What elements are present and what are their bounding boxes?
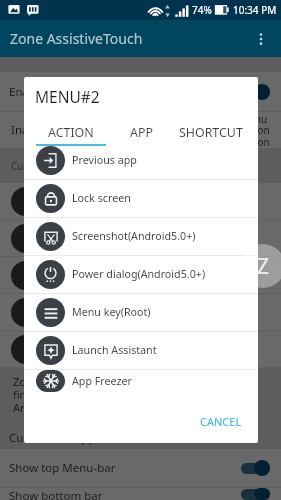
staticText: SHORTCUT	[179, 124, 243, 141]
button[interactable]: Lock screen	[24, 180, 258, 217]
button[interactable]: Screenshot(Android5.0+)	[24, 218, 258, 255]
button[interactable]: Show top Menu-bar	[0, 449, 281, 487]
button[interactable]: Inactive opacity	[0, 112, 281, 148]
staticText: Show top Menu-bar	[9, 460, 116, 476]
button[interactable]: Assistive touch bubble	[241, 244, 281, 288]
staticText: Zone AssistiveTouch	[10, 29, 143, 48]
staticText: Zone AssistiveTouch is a free app, if yo…	[13, 374, 218, 415]
button[interactable]: APP	[106, 121, 176, 143]
staticText: APP	[130, 124, 153, 141]
staticText: Screenshot(Android5.0+)	[72, 229, 196, 244]
button[interactable]: Menu#5	[0, 331, 281, 367]
button[interactable]: Custom bar appearance	[0, 426, 281, 449]
button[interactable]: CANCEL	[192, 408, 250, 435]
staticText: Launch Assistant	[72, 343, 157, 358]
staticText: Power dialog(Android5.0+)	[72, 267, 206, 282]
staticText: Menu#5	[48, 342, 92, 357]
button[interactable]: Enable assistive touch	[0, 72, 281, 111]
staticText: 74%	[192, 3, 212, 17]
staticText: CANCEL	[200, 414, 242, 429]
button[interactable]: Power dialog(Android5.0+)	[24, 256, 258, 293]
staticText: Menu#1	[48, 194, 92, 209]
staticText: App Freezer	[72, 374, 132, 389]
button[interactable]: Menu#1	[0, 183, 281, 219]
staticText: Enable assistive touch	[9, 84, 128, 100]
button[interactable]: Show bottom bar	[0, 488, 281, 500]
staticText: Custom bar appearance	[9, 430, 139, 446]
button[interactable]: Previous app	[24, 142, 258, 179]
button[interactable]: Launch Assistant	[24, 332, 258, 369]
button[interactable]: Menu#4	[0, 294, 281, 330]
button[interactable]: App Freezer	[24, 370, 258, 392]
staticText: Lock screen	[72, 191, 131, 206]
staticText: Z	[257, 252, 270, 281]
button[interactable]: Menu key(Root)	[24, 294, 258, 331]
staticText: Menu key(Root)	[72, 305, 151, 320]
staticText: Previous app	[72, 153, 137, 168]
button[interactable]: Menu#2	[0, 220, 281, 256]
staticText: Menu#2	[48, 231, 92, 246]
button[interactable]: More options	[245, 23, 277, 55]
button[interactable]: Menu#3	[0, 257, 281, 293]
staticText: MENU#2	[35, 86, 100, 107]
staticText: Menu Action Action	[240, 112, 270, 148]
staticText: Show bottom bar	[9, 488, 103, 500]
staticText: Menu#4	[48, 305, 92, 320]
button[interactable]: ACTION	[36, 121, 106, 143]
staticText: Inactive opacity	[11, 122, 96, 138]
button[interactable]: SHORTCUT	[176, 121, 246, 143]
staticText: Menu#3	[48, 268, 92, 283]
staticText: 10:34 PM	[233, 3, 277, 17]
staticText: Custom menu	[11, 159, 78, 173]
staticText: ACTION	[48, 124, 94, 141]
